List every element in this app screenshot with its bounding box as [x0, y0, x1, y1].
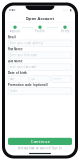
staticText: Open Account: [25, 16, 54, 21]
staticText: Profile: [35, 29, 45, 33]
staticText: Last Name: [8, 59, 23, 63]
staticText: Verify: [61, 29, 69, 33]
staticText: Email: [8, 35, 16, 39]
button[interactable]: YYYY: [52, 76, 72, 82]
button[interactable]: DD: [30, 76, 50, 82]
staticText: First Name: [8, 47, 23, 51]
staticText: Promotion code (optional): [8, 83, 48, 87]
staticText: Code: [10, 89, 18, 93]
button[interactable]: MM: [8, 76, 28, 82]
staticText: ◦◦◦ ▮: [63, 8, 71, 11]
staticText: Enter your first name: [10, 53, 38, 57]
staticText: DD: [31, 77, 35, 81]
staticText: Enter your email address: [10, 41, 43, 45]
button[interactable]: Enter your last name: [8, 64, 72, 70]
staticText: YYYY: [53, 77, 61, 81]
button[interactable]: Enter your email address: [8, 40, 72, 46]
button[interactable]: Code: [8, 88, 72, 94]
button[interactable]: Continue: [8, 138, 72, 145]
staticText: Date of birth: [8, 71, 27, 75]
staticText: Enter your last name: [10, 65, 37, 69]
staticText: Already have an account? Sign In: [18, 146, 62, 150]
button[interactable]: Already have an account? Sign In: [5, 145, 75, 151]
staticText: Continue: [30, 139, 49, 144]
staticText: 9:41: [9, 8, 16, 12]
button[interactable]: Enter your first name: [8, 52, 72, 58]
staticText: Account: [9, 29, 20, 33]
staticText: MM: [10, 77, 14, 81]
